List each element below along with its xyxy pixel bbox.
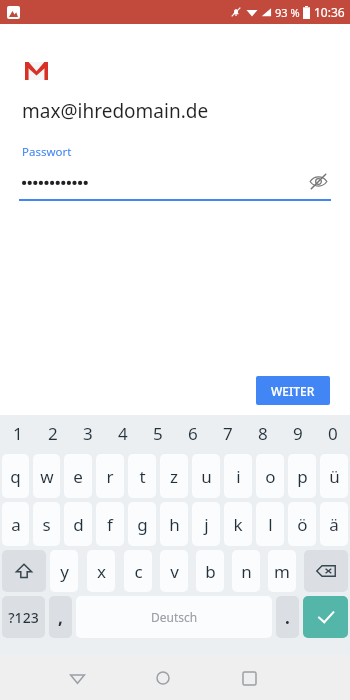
button[interactable]: 8 xyxy=(245,415,280,452)
button[interactable]: p xyxy=(288,454,316,498)
staticText: s xyxy=(42,513,51,536)
button[interactable]: , xyxy=(49,596,72,638)
button[interactable]: i xyxy=(224,454,252,498)
button[interactable]: ü xyxy=(320,454,348,498)
button[interactable]: c xyxy=(124,550,152,592)
button[interactable]: 2 xyxy=(35,415,70,452)
button[interactable]: m xyxy=(268,550,296,592)
button[interactable]: . xyxy=(276,596,299,638)
staticText: y xyxy=(60,560,69,583)
button[interactable]: q xyxy=(2,454,29,498)
staticText: o xyxy=(265,465,276,488)
staticText: 10:36 xyxy=(314,4,345,20)
button[interactable]: ?123 xyxy=(2,596,45,638)
staticText: k xyxy=(233,513,243,536)
staticText: WEITER xyxy=(271,383,315,399)
button[interactable]: r xyxy=(96,454,124,498)
button[interactable]: k xyxy=(224,502,252,546)
button[interactable]: w xyxy=(33,454,60,498)
button[interactable]: Löschen xyxy=(304,550,348,592)
button[interactable]: ö xyxy=(288,502,316,546)
button[interactable]: ä xyxy=(320,502,348,546)
staticText: l xyxy=(268,513,273,536)
staticText: 4 xyxy=(118,422,128,445)
button[interactable]: Übersicht xyxy=(227,656,271,700)
button[interactable]: 9 xyxy=(280,415,315,452)
staticText: f xyxy=(107,513,113,536)
button[interactable]: j xyxy=(192,502,220,546)
staticText: 8 xyxy=(258,422,268,445)
button[interactable]: l xyxy=(256,502,284,546)
button[interactable]: 6 xyxy=(175,415,210,452)
staticText: ä xyxy=(329,513,339,536)
staticText: j xyxy=(204,513,209,536)
staticText: w xyxy=(40,465,54,488)
button[interactable]: f xyxy=(96,502,124,546)
staticText: x xyxy=(97,560,106,583)
staticText: 7 xyxy=(223,422,233,445)
button[interactable]: Zurück xyxy=(55,656,99,700)
staticText: g xyxy=(137,513,148,536)
staticText: p xyxy=(297,465,308,488)
button[interactable]: y xyxy=(50,550,78,592)
staticText: b xyxy=(205,560,216,583)
staticText: d xyxy=(73,513,84,536)
staticText: h xyxy=(169,513,180,536)
staticText: 9 xyxy=(293,422,303,445)
staticText: max@ihredomain.de xyxy=(22,98,209,124)
button[interactable]: z xyxy=(160,454,188,498)
staticText: t xyxy=(139,465,146,488)
button[interactable]: o xyxy=(256,454,284,498)
staticText: u xyxy=(201,465,212,488)
button[interactable]: v xyxy=(160,550,188,592)
button[interactable]: e xyxy=(64,454,92,498)
button[interactable]: d xyxy=(64,502,92,546)
button[interactable]: Umschalt xyxy=(2,550,46,592)
button[interactable]: x xyxy=(87,550,115,592)
button[interactable]: 4 xyxy=(105,415,140,452)
staticText: 3 xyxy=(83,422,93,445)
staticText: v xyxy=(170,560,179,583)
staticText: ü xyxy=(329,465,340,488)
staticText: ?123 xyxy=(8,608,39,627)
button[interactable]: u xyxy=(192,454,220,498)
button[interactable]: 0 xyxy=(315,415,350,452)
button[interactable]: WEITER xyxy=(256,376,330,405)
button[interactable]: s xyxy=(33,502,60,546)
button[interactable]: 7 xyxy=(210,415,245,452)
staticText: a xyxy=(11,513,21,536)
staticText: 2 xyxy=(48,422,58,445)
staticText: c xyxy=(134,560,143,583)
staticText: q xyxy=(10,465,21,488)
button[interactable]: n xyxy=(232,550,260,592)
button[interactable]: t xyxy=(128,454,156,498)
staticText: , xyxy=(58,606,63,629)
staticText: e xyxy=(73,465,83,488)
staticText: n xyxy=(241,560,252,583)
staticText: . xyxy=(285,606,290,629)
button[interactable]: 3 xyxy=(70,415,105,452)
staticText: m xyxy=(274,560,290,583)
button[interactable]: Startbildschirm xyxy=(141,656,185,700)
button[interactable]: Passwort ausblenden xyxy=(305,168,331,194)
staticText: 1 xyxy=(13,422,23,445)
button[interactable]: 5 xyxy=(140,415,175,452)
button[interactable]: b xyxy=(196,550,224,592)
button[interactable]: h xyxy=(160,502,188,546)
staticText: ö xyxy=(297,513,308,536)
staticText: z xyxy=(170,465,178,488)
staticText: Deutsch xyxy=(151,609,198,625)
button[interactable]: 1 xyxy=(0,415,35,452)
button[interactable]: Eingabe xyxy=(303,596,348,638)
staticText: i xyxy=(236,465,241,488)
staticText: 6 xyxy=(188,422,198,445)
button[interactable]: g xyxy=(128,502,156,546)
staticText: 5 xyxy=(153,422,163,445)
staticText: r xyxy=(106,465,114,488)
button[interactable]: a xyxy=(2,502,29,546)
button[interactable]: Deutsch xyxy=(76,596,272,638)
staticText: 93 % xyxy=(275,5,300,20)
staticText: Passwort xyxy=(22,144,72,160)
staticText: 0 xyxy=(328,422,338,445)
